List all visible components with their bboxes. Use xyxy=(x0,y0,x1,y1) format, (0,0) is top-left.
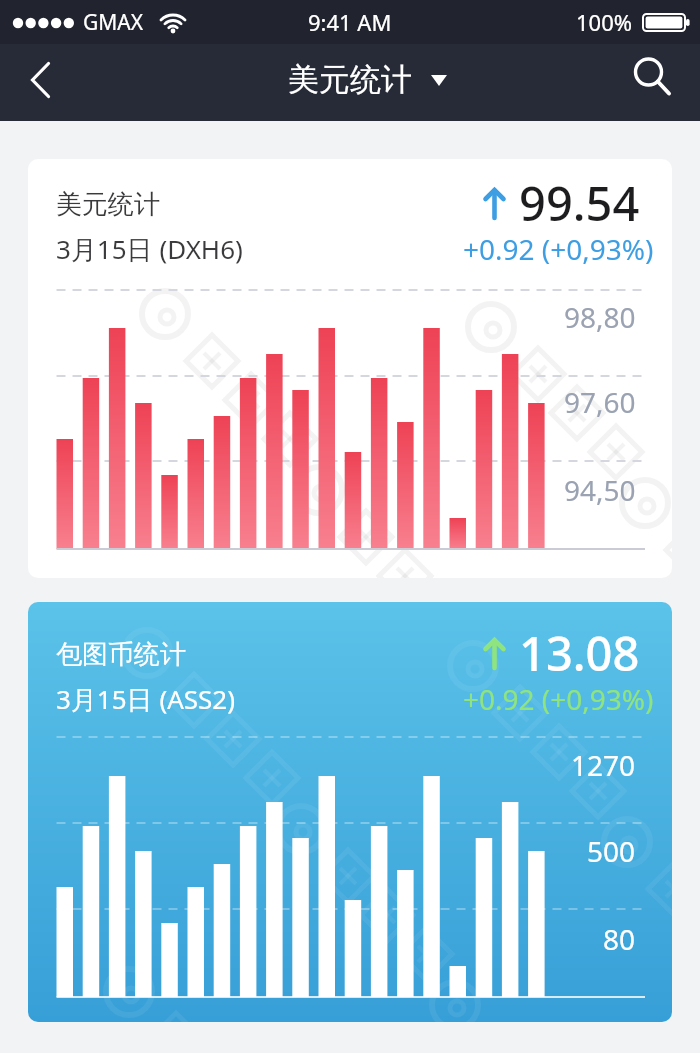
staticText: +0.92 (+0,93%) xyxy=(463,230,654,268)
button[interactable] xyxy=(625,50,677,102)
button[interactable] xyxy=(14,54,66,106)
staticText: +0.92 (+0,93%) xyxy=(463,680,654,718)
staticText: 美元统计 xyxy=(56,188,160,221)
staticText: GMAX xyxy=(83,8,144,37)
staticText: 3月15日 (DXH6) xyxy=(56,231,243,267)
staticText: 美元统计 xyxy=(288,60,412,99)
button[interactable]: 美元统计 xyxy=(288,60,412,99)
staticText: 98,80 xyxy=(564,298,636,336)
button[interactable]: 包图币统计 xyxy=(28,602,672,1022)
staticText: 97,60 xyxy=(564,383,636,421)
button[interactable]: 美元统计 xyxy=(28,159,672,578)
staticText: 包图币统计 xyxy=(56,638,186,671)
staticText: 94,50 xyxy=(564,471,636,509)
staticText: 13.08 xyxy=(519,621,640,685)
staticText: 80 xyxy=(603,920,636,958)
staticText: 1270 xyxy=(571,746,636,784)
staticText: 3月15日 (ASS2) xyxy=(56,681,236,717)
staticText: 99.54 xyxy=(519,171,640,235)
staticText: 500 xyxy=(587,832,636,870)
staticText: 9:41 AM xyxy=(308,7,392,37)
staticText: 100% xyxy=(576,7,633,37)
